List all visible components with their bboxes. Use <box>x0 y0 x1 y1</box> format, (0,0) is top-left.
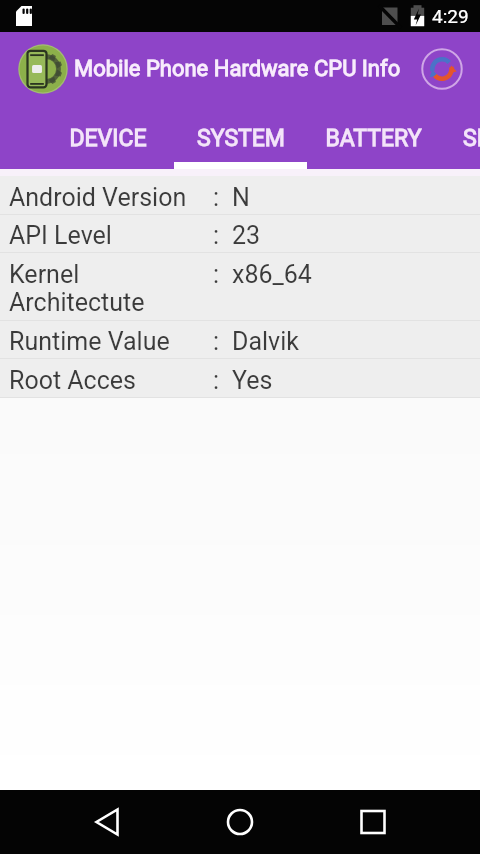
button[interactable]: SYSTEM <box>174 105 307 169</box>
staticText: Root Acces <box>9 366 213 395</box>
button[interactable]: Back <box>79 794 135 850</box>
staticText: Mobile Phone Hardware CPU Info <box>74 56 401 82</box>
button[interactable]: SENSOR <box>440 105 480 169</box>
staticText: Yes <box>232 366 273 395</box>
staticText: Dalvik <box>232 327 299 356</box>
staticText: Kernel Architectute <box>9 260 213 317</box>
staticText: : <box>213 183 220 212</box>
staticText: 4:29 <box>432 5 469 27</box>
staticText: x86_64 <box>232 260 312 289</box>
staticText: N <box>232 183 250 212</box>
staticText: DEVICE <box>69 125 147 152</box>
staticText: : <box>213 366 220 395</box>
button[interactable]: Home <box>212 794 268 850</box>
staticText: SENSOR <box>463 125 480 152</box>
button[interactable]: DEVICE <box>41 105 174 169</box>
staticText: SYSTEM <box>197 125 285 152</box>
staticText: 23 <box>232 221 261 250</box>
button[interactable]: Refresh <box>420 47 464 91</box>
staticText: : <box>213 327 220 356</box>
staticText: Runtime Value <box>9 327 213 356</box>
staticText: : <box>213 221 220 250</box>
staticText: API Level <box>9 221 213 250</box>
button[interactable]: BATTERY <box>307 105 440 169</box>
staticText: BATTERY <box>325 125 422 152</box>
staticText: : <box>213 260 220 289</box>
staticText: Android Version <box>9 183 213 212</box>
button[interactable]: Recent apps <box>345 794 401 850</box>
